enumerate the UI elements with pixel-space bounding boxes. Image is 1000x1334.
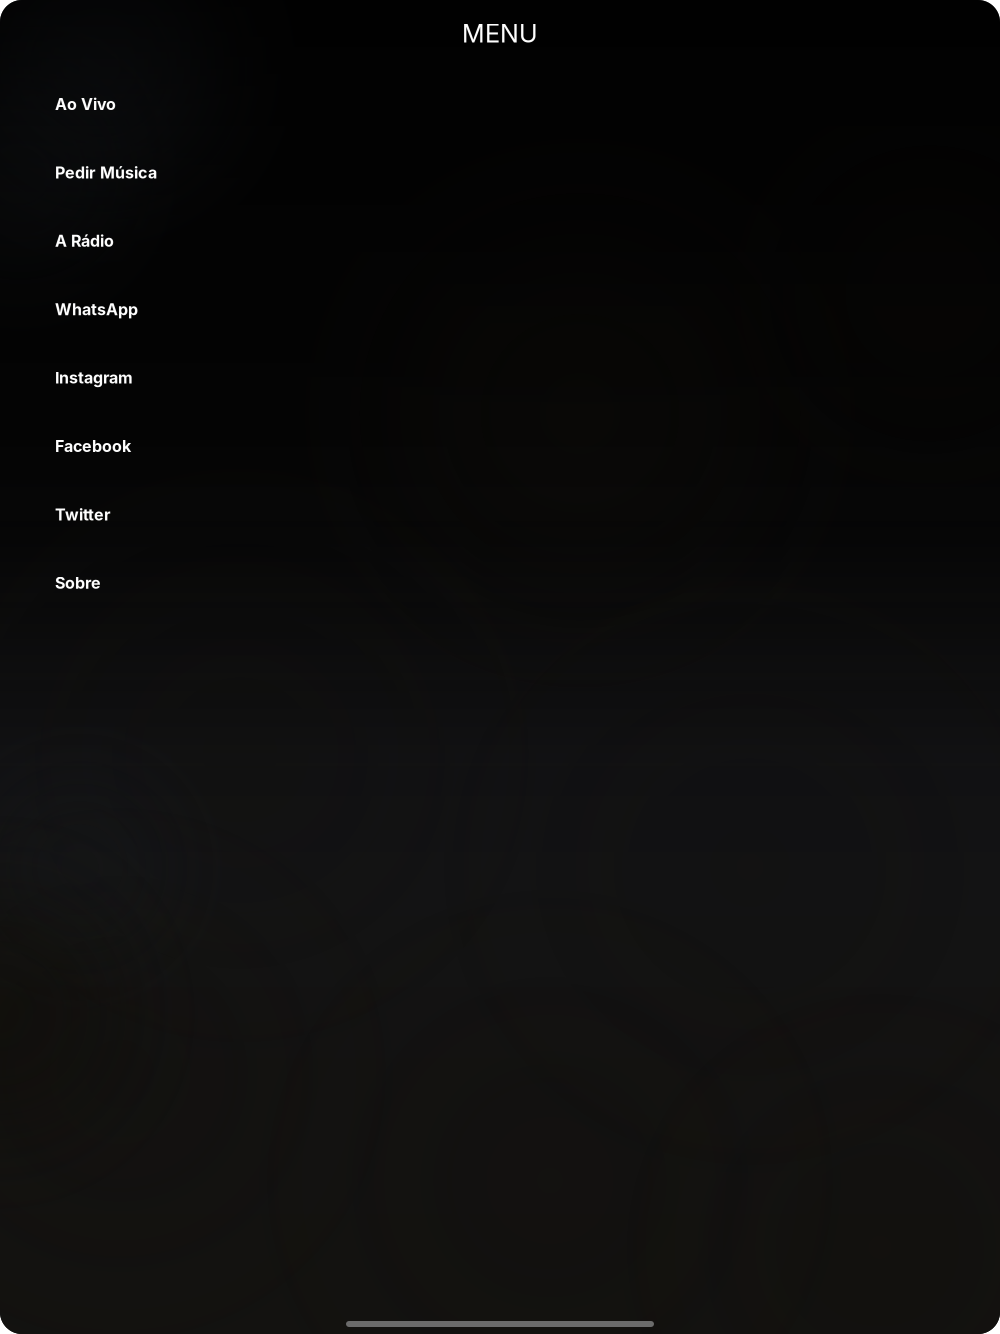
- staticText: Facebook: [55, 436, 131, 456]
- staticText: MENU: [462, 18, 538, 49]
- button[interactable]: Ao Vivo: [0, 70, 1000, 138]
- button[interactable]: WhatsApp: [0, 275, 1000, 344]
- staticText: Instagram: [55, 368, 133, 387]
- staticText: Twitter: [55, 505, 111, 524]
- button[interactable]: Sobre: [0, 549, 1000, 617]
- button[interactable]: Facebook: [0, 412, 1000, 480]
- staticText: Sobre: [55, 573, 101, 593]
- button[interactable]: Instagram: [0, 344, 1000, 412]
- staticText: Ao Vivo: [55, 94, 116, 114]
- staticText: A Rádio: [55, 231, 114, 251]
- button[interactable]: Twitter: [0, 480, 1000, 549]
- staticText: WhatsApp: [55, 300, 138, 319]
- button[interactable]: Pedir Música: [0, 138, 1000, 207]
- button[interactable]: A Rádio: [0, 207, 1000, 275]
- staticText: Pedir Música: [55, 163, 157, 182]
